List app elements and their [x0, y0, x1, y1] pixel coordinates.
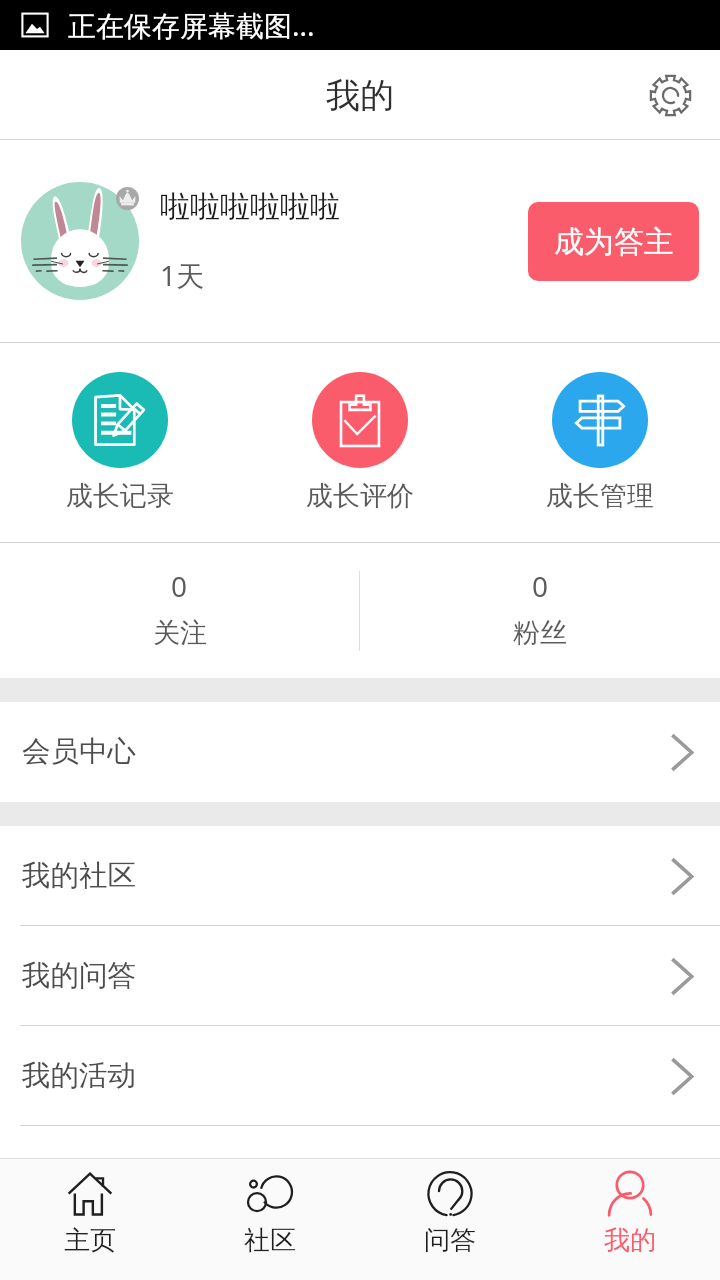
staticText: 成长记录 — [66, 479, 174, 513]
staticText: 问答 — [424, 1224, 476, 1257]
staticText: 我的 — [604, 1224, 656, 1257]
button[interactable]: 社区 — [180, 1159, 360, 1280]
button[interactable]: 我的 — [540, 1159, 720, 1280]
staticText: 我的社区 — [22, 858, 136, 894]
button[interactable]: 啦啦啦啦啦啦 — [0, 140, 720, 342]
button[interactable]: 会员中心 — [0, 702, 720, 802]
staticText: 0 — [532, 567, 549, 605]
staticText: 1天 — [160, 256, 205, 294]
staticText: 主页 — [64, 1224, 116, 1257]
staticText: 粉丝 — [513, 616, 567, 650]
staticText: 会员中心 — [22, 734, 136, 770]
button[interactable]: 问答 — [360, 1159, 540, 1280]
button[interactable]: 成为答主 — [528, 202, 699, 281]
staticText: 啦啦啦啦啦啦 — [160, 188, 340, 226]
button[interactable]: Settings — [642, 67, 698, 123]
staticText: 关注 — [153, 616, 207, 650]
button[interactable]: 0 — [0, 543, 359, 678]
button[interactable]: 我的问答 — [0, 926, 720, 1026]
staticText: 成长管理 — [546, 479, 654, 513]
button[interactable]: 我的活动 — [0, 1026, 720, 1126]
staticText: 0 — [171, 567, 188, 605]
staticText: 正在保存屏幕截图... — [68, 6, 315, 44]
staticText: 成长评价 — [306, 479, 414, 513]
staticText: 社区 — [244, 1224, 296, 1257]
button[interactable]: 成长评价 — [240, 343, 480, 542]
button[interactable]: 0 — [360, 543, 720, 678]
button[interactable]: 成长记录 — [0, 343, 240, 542]
staticText: 成为答主 — [554, 223, 674, 261]
staticText: 我的问答 — [22, 958, 136, 994]
button[interactable]: 主页 — [0, 1159, 180, 1280]
button[interactable]: 我的社区 — [0, 826, 720, 926]
staticText: 我的 — [326, 74, 394, 117]
button[interactable]: 成长管理 — [480, 343, 720, 542]
staticText: 我的活动 — [22, 1058, 136, 1094]
